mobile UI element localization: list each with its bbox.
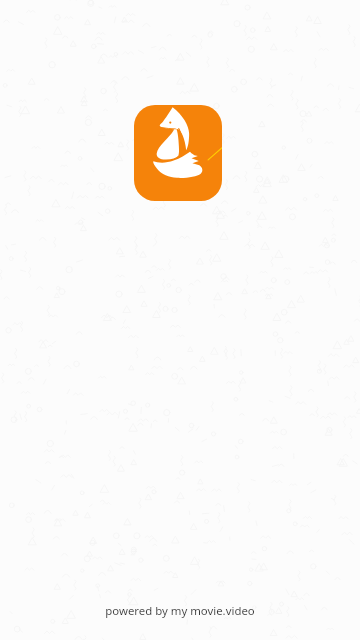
- staticText: powered by my movie.video: [0, 603, 360, 619]
